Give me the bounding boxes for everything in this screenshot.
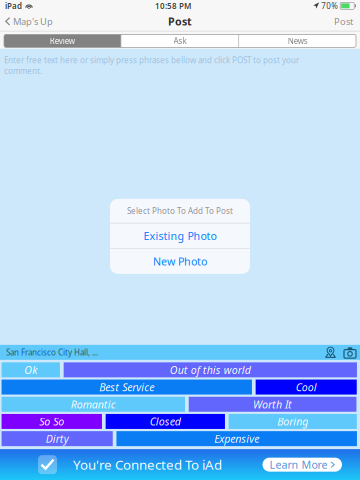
- button[interactable]: Ask: [121, 34, 238, 47]
- staticText: Ask: [173, 35, 186, 46]
- staticText: Post: [334, 15, 353, 28]
- staticText: Map's Up: [13, 15, 53, 28]
- button[interactable]: Out of this world: [64, 362, 357, 377]
- staticText: Best Service: [99, 380, 154, 394]
- staticText: Worth It: [253, 397, 292, 411]
- staticText: Learn More: [269, 458, 327, 472]
- staticText: Enter free text here or simply press phr…: [4, 55, 299, 76]
- staticText: Review: [50, 35, 75, 46]
- button[interactable]: Closed: [106, 414, 225, 429]
- staticText: You're Connected To iAd: [73, 456, 222, 473]
- button[interactable]: Map's Up: [0, 12, 59, 31]
- button[interactable]: News: [239, 34, 356, 47]
- staticText: New Photo: [153, 254, 207, 268]
- staticText: Post: [168, 14, 192, 28]
- button[interactable]: Best Service: [2, 380, 252, 395]
- button[interactable]: Review: [4, 34, 121, 47]
- button[interactable]: Location: [321, 345, 340, 360]
- staticText: Romantic: [71, 397, 116, 411]
- staticText: 70%: [321, 0, 338, 11]
- button[interactable]: Worth It: [189, 397, 356, 412]
- staticText: 10:58 PM: [155, 0, 191, 11]
- staticText: Select Photo To Add To Post: [127, 205, 233, 216]
- staticText: So So: [39, 414, 64, 429]
- button[interactable]: Existing Photo: [110, 223, 250, 248]
- button[interactable]: Romantic: [2, 397, 185, 412]
- staticText: News: [288, 35, 308, 46]
- button[interactable]: Boring: [229, 414, 357, 429]
- staticText: Dirty: [46, 432, 69, 446]
- staticText: Existing Photo: [143, 229, 216, 243]
- staticText: Closed: [150, 414, 181, 429]
- button[interactable]: Post: [327, 12, 360, 31]
- staticText: San Francisco City Hall, ...: [6, 347, 98, 358]
- button[interactable]: So So: [2, 414, 102, 429]
- button[interactable]: Camera: [340, 345, 360, 360]
- staticText: Out of this world: [170, 363, 251, 377]
- button[interactable]: Expensive: [116, 431, 357, 446]
- staticText: Ok: [24, 363, 37, 377]
- button[interactable]: You're Connected To iAd: [0, 449, 360, 480]
- button[interactable]: Learn More: [262, 458, 342, 472]
- button[interactable]: Dirty: [2, 431, 113, 446]
- staticText: Expensive: [214, 432, 259, 446]
- button[interactable]: New Photo: [110, 249, 250, 274]
- button[interactable]: Cool: [256, 380, 357, 395]
- button[interactable]: Ok: [2, 362, 60, 377]
- staticText: Boring: [277, 414, 308, 429]
- staticText: iPad: [5, 0, 22, 11]
- staticText: Cool: [296, 380, 317, 394]
